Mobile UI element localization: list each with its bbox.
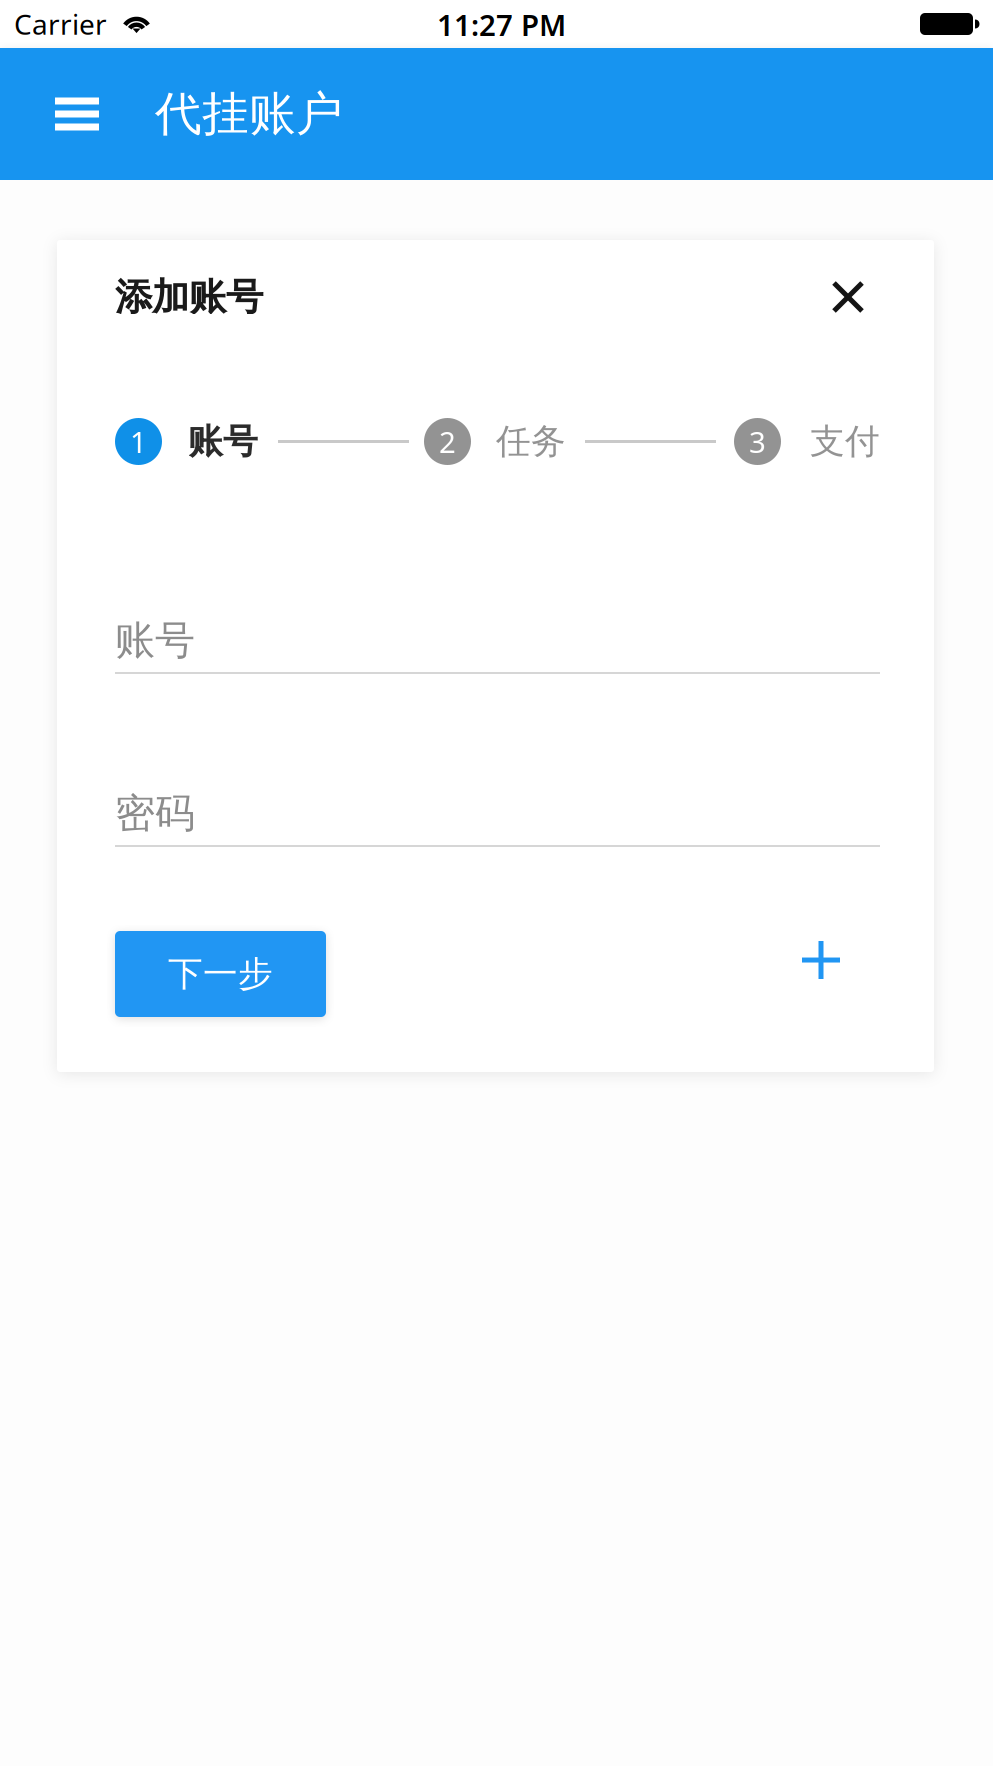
staticText: 账号: [115, 616, 195, 665]
staticText: Carrier: [14, 5, 107, 43]
staticText: 添加账号: [115, 274, 263, 320]
staticText: 1: [130, 422, 147, 461]
button[interactable]: 下一步: [115, 931, 326, 1017]
staticText: 2: [439, 422, 456, 461]
button[interactable]: Close: [818, 267, 878, 327]
staticText: 3: [749, 422, 766, 461]
staticText: 任务: [496, 420, 566, 463]
staticText: 11:27 PM: [437, 5, 566, 44]
staticText: 密码: [115, 789, 195, 838]
button[interactable]: 账号: [115, 617, 880, 674]
button[interactable]: Add another account: [785, 924, 857, 996]
staticText: 代挂账户: [155, 85, 343, 143]
staticText: 账号: [188, 420, 258, 463]
button[interactable]: Menu: [33, 72, 121, 156]
staticText: 支付: [810, 420, 880, 463]
button[interactable]: 密码: [115, 790, 880, 847]
staticText: 下一步: [168, 953, 273, 995]
